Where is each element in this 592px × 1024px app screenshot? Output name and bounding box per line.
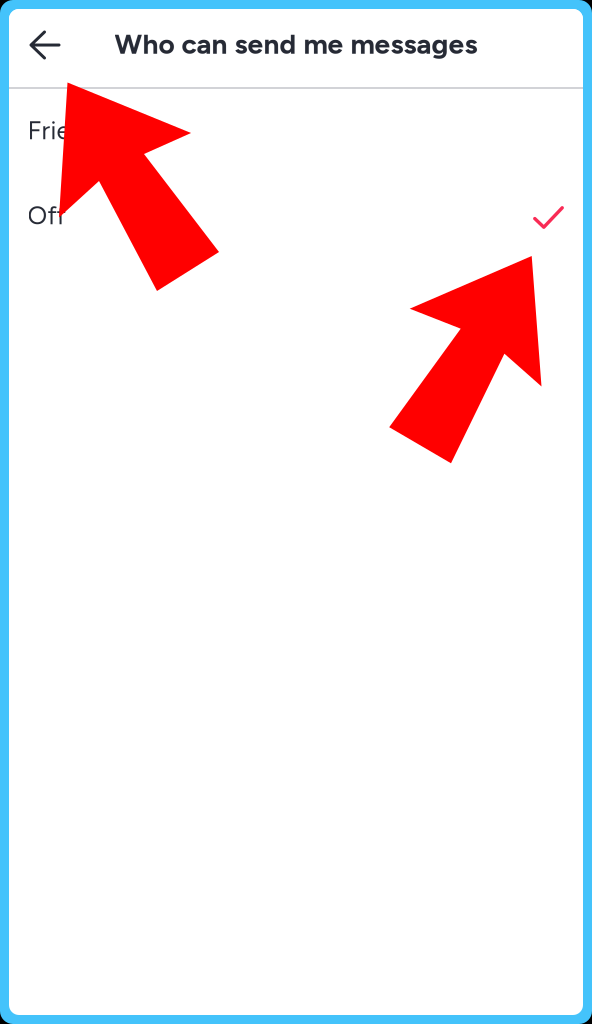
button[interactable]: Friends <box>9 89 583 174</box>
staticText: Friends <box>27 115 111 146</box>
staticText: Off <box>27 200 65 231</box>
button[interactable]: Off <box>9 174 583 259</box>
button[interactable]: Back <box>19 16 71 74</box>
staticText: Who can send me messages <box>114 27 477 61</box>
